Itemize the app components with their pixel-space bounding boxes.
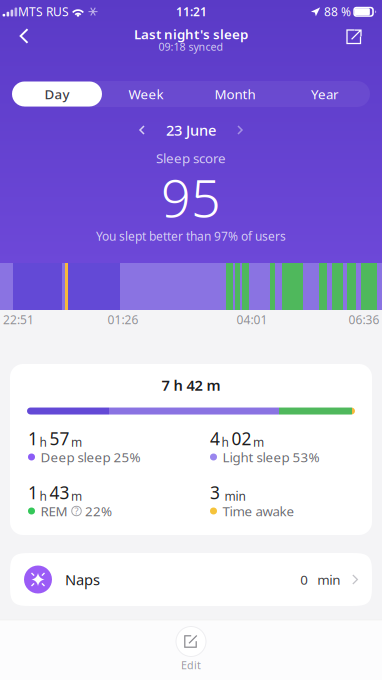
staticText: h [39, 434, 46, 450]
staticText: 43 [49, 481, 69, 504]
staticText: m [253, 434, 264, 450]
staticText: 09:18 synced [158, 39, 223, 54]
button[interactable]: Next day [227, 118, 253, 142]
staticText: 11:21 [176, 4, 207, 19]
staticText: Light sleep 53% [222, 448, 319, 466]
staticText: 01:26 [107, 311, 138, 327]
staticText: Day [44, 85, 69, 103]
button[interactable]: Share [333, 19, 375, 55]
staticText: Naps [65, 570, 100, 589]
staticText: min [221, 488, 245, 504]
staticText: 7 h 42 m [161, 375, 220, 395]
staticText: 1 [28, 427, 38, 450]
staticText: 23 June [166, 120, 216, 140]
staticText: Month [214, 85, 255, 103]
staticText: Year [311, 85, 339, 103]
button[interactable]: Month [190, 81, 280, 107]
button[interactable]: Naps [10, 553, 372, 606]
staticText: h [221, 434, 228, 450]
staticText: Edit [181, 658, 201, 672]
staticText: Deep sleep 25% [40, 448, 140, 466]
staticText: h [39, 488, 46, 504]
staticText: 1 [28, 481, 38, 504]
staticText: REM [40, 502, 67, 520]
button[interactable]: Week [102, 81, 190, 107]
button[interactable]: Previous day [129, 118, 155, 142]
staticText: Time awake [222, 502, 294, 520]
staticText: MTS RUS [18, 4, 69, 19]
staticText: 4 [210, 427, 220, 450]
staticText: 06:36 [348, 311, 379, 327]
button[interactable]: Day [12, 81, 102, 107]
staticText: 0 min [300, 571, 340, 588]
staticText: You slept better than 97% of users [96, 228, 286, 244]
staticText: 88 % [324, 4, 351, 19]
staticText: Sleep score [156, 149, 226, 167]
staticText: 22% [85, 502, 112, 520]
staticText: 3 [210, 481, 220, 504]
staticText: 04:01 [236, 311, 267, 327]
staticText: 95 [161, 162, 221, 232]
button[interactable]: Edit [167, 623, 215, 659]
staticText: 22:51 [3, 311, 34, 327]
button[interactable]: Back [3, 18, 45, 54]
staticText: 57 [49, 427, 69, 450]
staticText: m [71, 434, 82, 450]
staticText: ? [74, 505, 78, 517]
staticText: Week [128, 85, 163, 103]
button[interactable]: Year [280, 81, 370, 107]
staticText: m [71, 488, 82, 504]
staticText: 02 [231, 427, 251, 450]
staticText: Last night's sleep [134, 25, 248, 43]
